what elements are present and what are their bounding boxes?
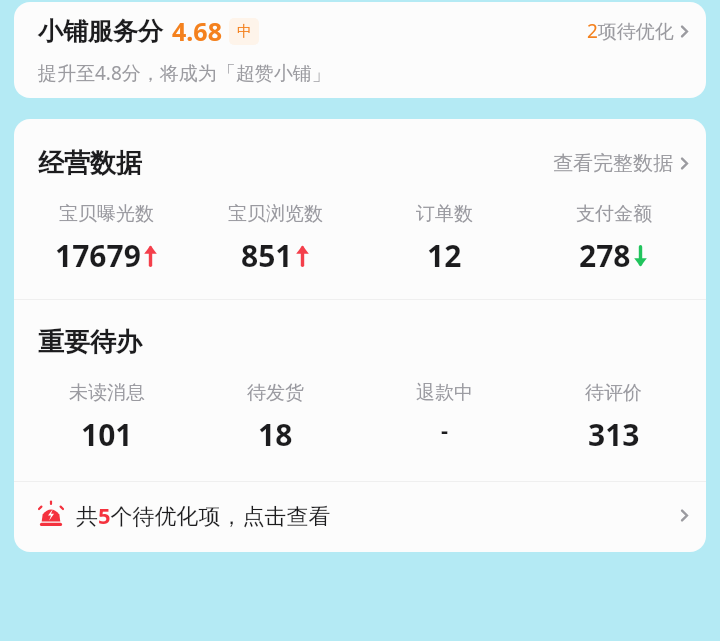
staticText: 退款中 (416, 381, 473, 405)
staticText: 宝贝浏览数 (228, 202, 323, 226)
staticText: 中 (237, 22, 252, 41)
staticText: 共5个待优化项，点击查看 (76, 500, 331, 530)
button[interactable]: 小铺服务分 (14, 2, 706, 98)
staticText: 支付金额 (576, 202, 652, 226)
staticText: 小铺服务分 (38, 16, 163, 47)
staticText: 313 (588, 414, 640, 455)
button[interactable]: Alert (14, 482, 706, 552)
staticText: 经营数据 (38, 147, 142, 180)
staticText: 查看完整数据 (553, 151, 673, 176)
button[interactable]: 待发货 (191, 381, 360, 455)
button[interactable]: 2项待优化 (583, 12, 692, 50)
staticText: - (441, 414, 449, 444)
other: Alert (36, 500, 66, 530)
staticText: 17679 (55, 235, 141, 276)
button[interactable]: 未读消息 (22, 381, 191, 455)
staticText: 待评价 (585, 381, 642, 405)
staticText: 订单数 (416, 202, 473, 226)
staticText: 2项待优化 (587, 18, 674, 44)
button[interactable]: 宝贝浏览数 (191, 202, 360, 276)
staticText: 851 (241, 235, 293, 276)
staticText: 18 (258, 414, 293, 455)
staticText: 12 (427, 235, 462, 276)
staticText: 未读消息 (69, 381, 145, 405)
staticText: 4.68 (172, 14, 222, 48)
button[interactable]: 支付金额 (529, 202, 698, 276)
staticText: 提升至4.8分，将成为「超赞小铺」 (38, 60, 331, 86)
button[interactable]: 查看完整数据 (549, 145, 692, 182)
button[interactable]: 宝贝曝光数 (22, 202, 191, 276)
button[interactable]: 待评价 (529, 381, 698, 455)
staticText: 278 (579, 235, 631, 276)
button[interactable]: 订单数 (360, 202, 529, 276)
staticText: 待发货 (247, 381, 304, 405)
staticText: 101 (81, 414, 133, 455)
button[interactable]: 退款中 (360, 381, 529, 444)
staticText: 重要待办 (38, 326, 142, 359)
staticText: 宝贝曝光数 (59, 202, 154, 226)
